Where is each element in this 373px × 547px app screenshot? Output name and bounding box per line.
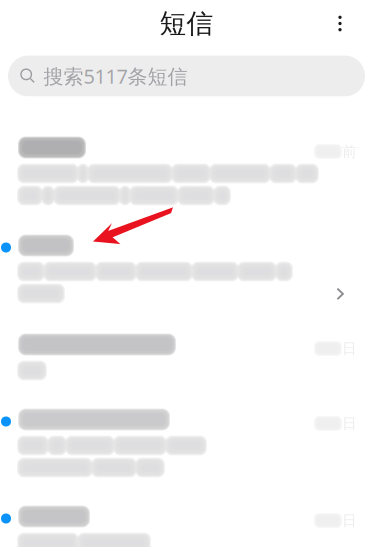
button[interactable]: 日	[0, 501, 373, 547]
staticText: 前	[342, 142, 357, 160]
button[interactable]: More options	[323, 6, 357, 40]
staticText: 日	[342, 414, 357, 432]
button[interactable]: 搜索5117条短信	[8, 55, 365, 96]
staticText: 日	[342, 511, 357, 529]
button[interactable]: 日	[0, 404, 373, 501]
button[interactable]	[0, 230, 373, 329]
staticText: 搜索5117条短信	[44, 63, 188, 89]
button[interactable]: 前	[0, 132, 373, 230]
staticText: 日	[342, 339, 357, 357]
button[interactable]: 日	[0, 329, 373, 404]
staticText: 短信	[159, 7, 213, 40]
